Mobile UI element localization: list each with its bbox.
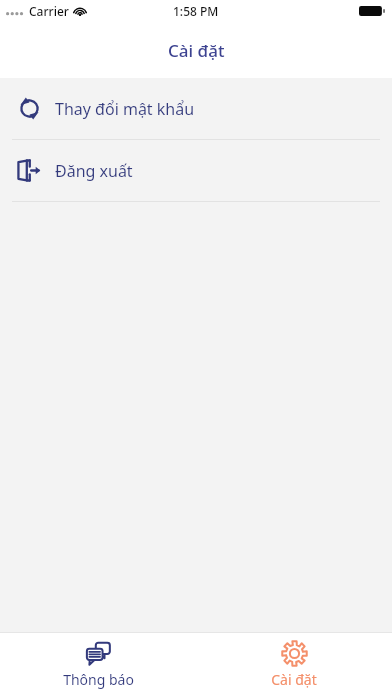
staticText: Carrier [29, 3, 69, 19]
other: Log out [16, 157, 43, 184]
button[interactable]: Change password [0, 78, 392, 139]
staticText: Đăng xuất [55, 160, 133, 182]
button[interactable]: Notifications [0, 633, 196, 696]
button[interactable]: Settings [196, 633, 392, 696]
staticText: Cài đặt [168, 39, 225, 62]
staticText: 1:58 PM [173, 3, 219, 19]
other: Settings [281, 640, 308, 667]
other: Notifications [85, 640, 112, 667]
staticText: Cài đặt [271, 670, 317, 689]
staticText: Thông báo [63, 670, 134, 689]
button[interactable]: Log out [0, 140, 392, 201]
other: Change password [16, 95, 43, 122]
staticText: Thay đổi mật khẩu [55, 98, 195, 120]
